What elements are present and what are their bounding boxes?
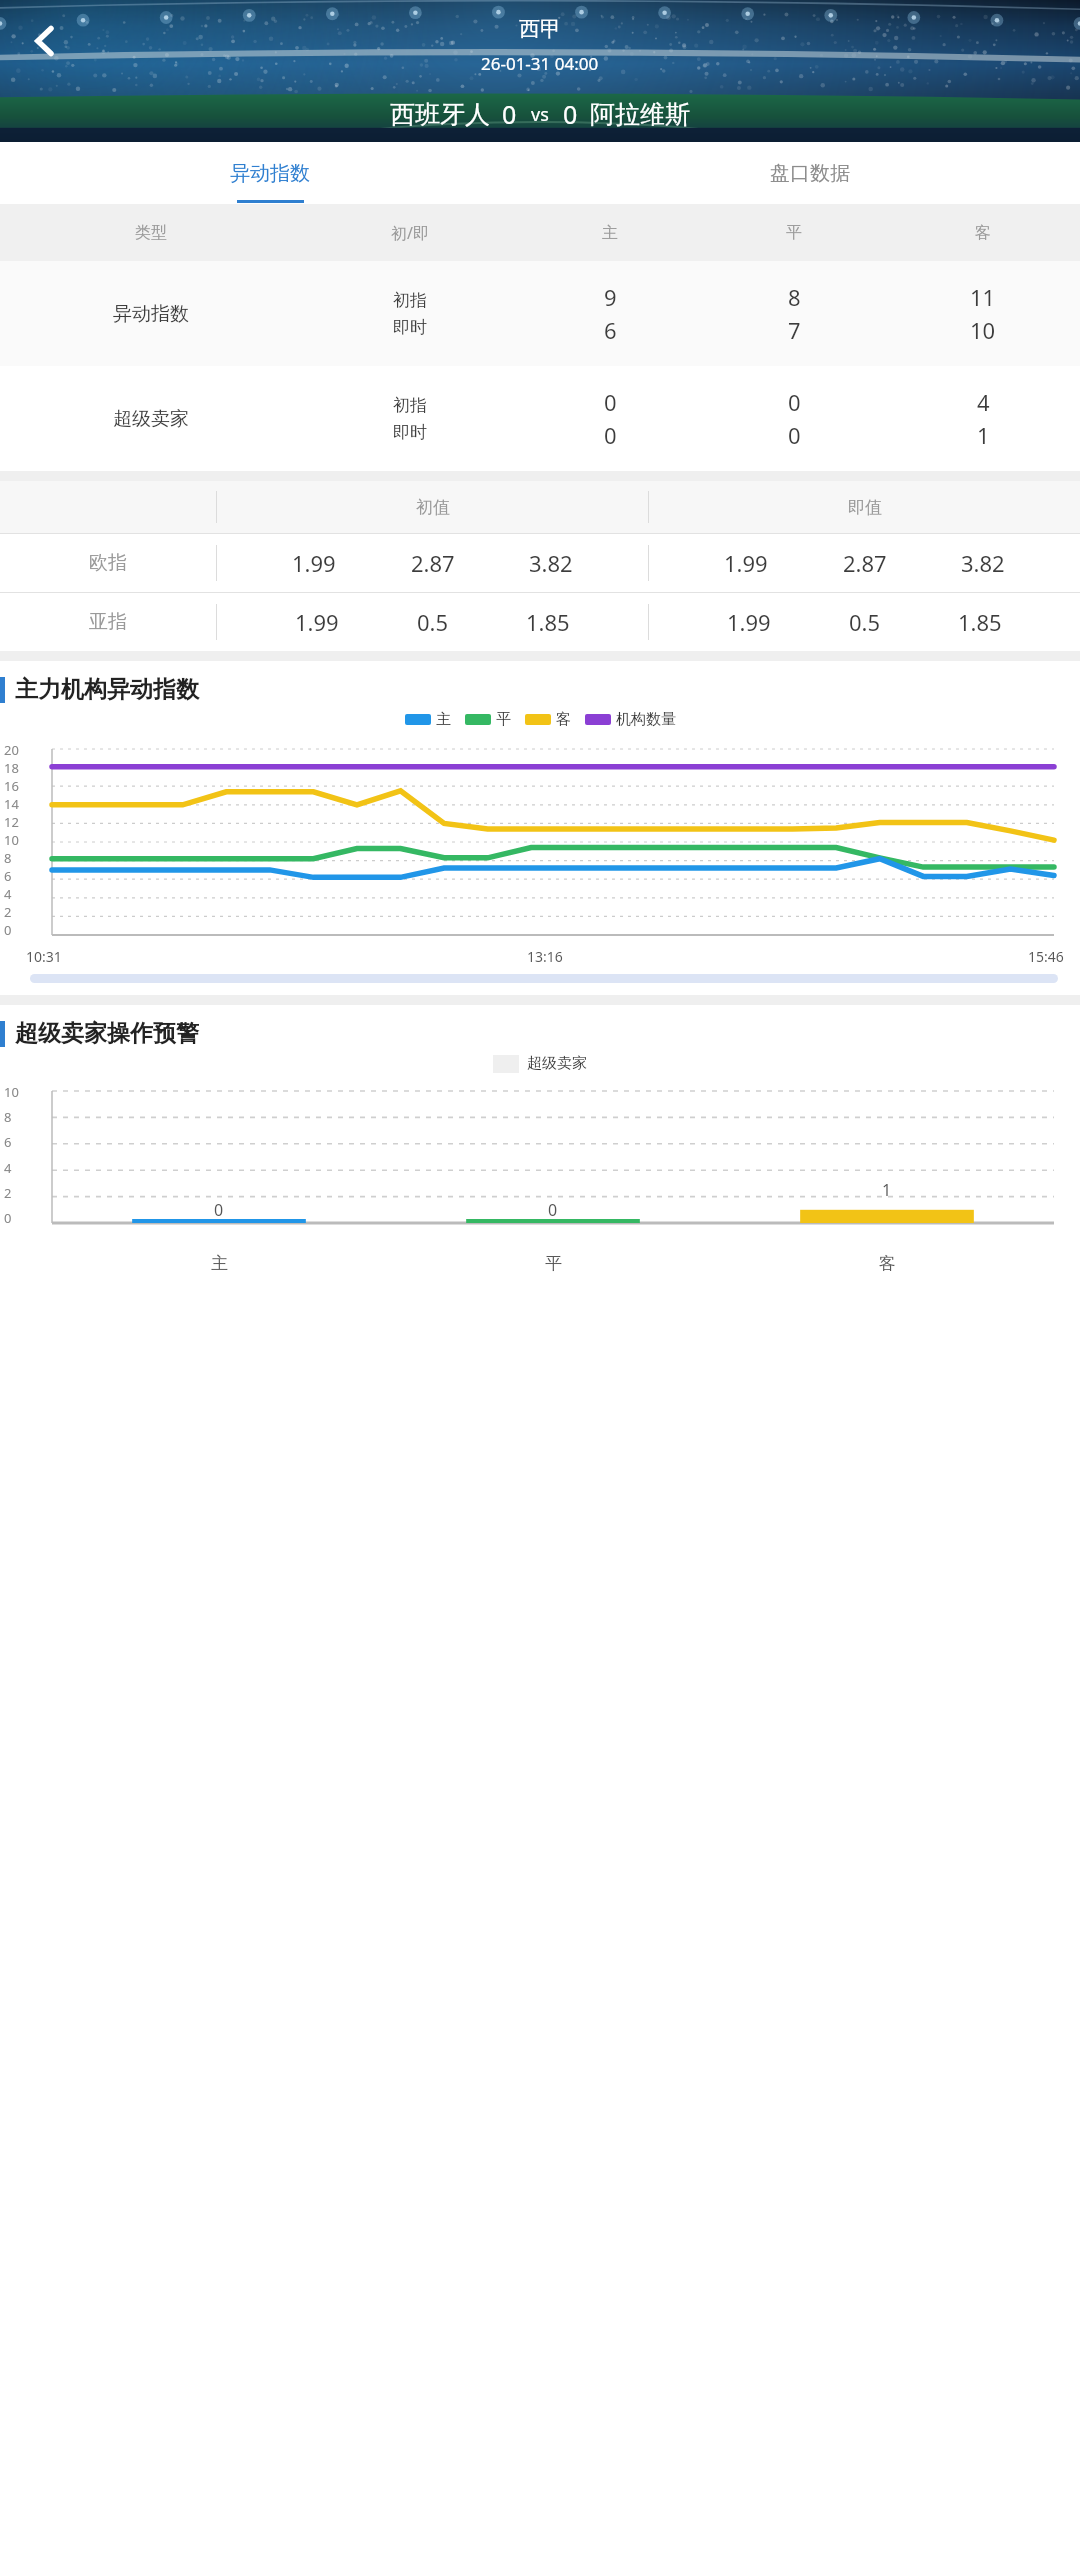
staticText: 0 <box>4 921 12 935</box>
staticText: 8 <box>4 1108 12 1126</box>
staticText: 超级卖家 <box>113 407 189 431</box>
staticText: 超级卖家 <box>527 1054 587 1073</box>
staticText: 亚指 <box>89 610 127 634</box>
staticText: 26-01-31 04:00 <box>481 52 599 75</box>
staticText: 0 <box>604 387 617 417</box>
button[interactable]: Back <box>18 14 72 68</box>
button[interactable]: 异动指数 <box>0 261 1080 366</box>
staticText: 客 <box>975 223 991 243</box>
staticText: 主 <box>436 710 451 729</box>
staticText: 18 <box>4 759 19 777</box>
staticText: 即时 <box>393 422 427 443</box>
staticText: 2.87 <box>411 548 455 578</box>
staticText: 13:16 <box>527 947 563 966</box>
staticText: 平 <box>496 710 511 729</box>
staticText: 10 <box>4 831 19 849</box>
staticText: 9 <box>604 282 617 312</box>
staticText: 0 <box>563 97 578 131</box>
staticText: 4 <box>977 387 990 417</box>
staticText: 6 <box>4 1133 12 1151</box>
staticText: 6 <box>604 315 617 345</box>
button[interactable]: 亚指 <box>0 593 1080 651</box>
staticText: 2 <box>4 903 12 921</box>
staticText: 客 <box>879 1253 896 1274</box>
staticText: 0 <box>4 1209 12 1227</box>
staticText: 6 <box>4 867 12 885</box>
staticText: 20 <box>4 741 19 759</box>
staticText: 8 <box>4 849 12 867</box>
button[interactable]: 异动指数 <box>0 142 540 204</box>
staticText: 欧指 <box>89 551 127 575</box>
staticText: 3.82 <box>961 548 1005 578</box>
staticText: 10 <box>970 315 996 345</box>
staticText: 7 <box>788 315 801 345</box>
staticText: 0.5 <box>417 607 449 637</box>
staticText: 4 <box>4 885 12 903</box>
staticText: 平 <box>786 223 802 243</box>
staticText: 西甲 <box>519 16 561 42</box>
staticText: 12 <box>4 813 19 831</box>
staticText: 0 <box>548 1199 558 1221</box>
staticText: 初指 <box>393 395 427 416</box>
staticText: 阿拉维斯 <box>590 99 690 130</box>
staticText: 1.99 <box>292 548 336 578</box>
staticText: 8 <box>788 282 801 312</box>
staticText: 0 <box>604 420 617 450</box>
staticText: 异动指数 <box>113 302 189 326</box>
staticText: 超级卖家操作预警 <box>15 1019 199 1048</box>
staticText: 1.99 <box>727 607 771 637</box>
staticText: 0 <box>788 387 801 417</box>
staticText: 3.82 <box>529 548 573 578</box>
staticText: 平 <box>545 1253 562 1274</box>
staticText: 1 <box>977 420 990 450</box>
staticText: 初指 <box>393 290 427 311</box>
staticText: 0.5 <box>849 607 881 637</box>
staticText: 盘口数据 <box>770 161 850 186</box>
staticText: vs <box>531 102 549 127</box>
button[interactable]: 盘口数据 <box>540 142 1080 204</box>
staticText: 0 <box>502 97 517 131</box>
staticText: 1.85 <box>958 607 1002 637</box>
staticText: 0 <box>788 420 801 450</box>
staticText: 15:46 <box>1028 947 1064 966</box>
staticText: 4 <box>4 1159 12 1177</box>
staticText: 即时 <box>393 317 427 338</box>
staticText: 10 <box>4 1083 19 1101</box>
staticText: 2 <box>4 1184 12 1202</box>
button[interactable]: 欧指 <box>0 534 1080 592</box>
staticText: 1.85 <box>526 607 570 637</box>
staticText: 机构数量 <box>616 710 676 729</box>
staticText: 主 <box>602 223 618 243</box>
staticText: 0 <box>214 1199 224 1221</box>
staticText: 1.99 <box>295 607 339 637</box>
staticText: 初/即 <box>391 222 429 244</box>
staticText: 1 <box>882 1179 892 1201</box>
staticText: 11 <box>970 282 996 312</box>
staticText: 16 <box>4 777 19 795</box>
staticText: 即值 <box>848 497 882 518</box>
staticText: 1.99 <box>724 548 768 578</box>
staticText: 异动指数 <box>230 161 310 186</box>
staticText: 类型 <box>135 223 167 243</box>
staticText: 客 <box>556 710 571 729</box>
staticText: 14 <box>4 795 19 813</box>
staticText: 10:31 <box>26 947 62 966</box>
button[interactable]: 超级卖家 <box>0 366 1080 471</box>
staticText: 主 <box>211 1253 228 1274</box>
staticText: 初值 <box>416 497 450 518</box>
staticText: 2.87 <box>843 548 887 578</box>
staticText: 西班牙人 <box>390 99 490 130</box>
staticText: 主力机构异动指数 <box>15 675 199 704</box>
